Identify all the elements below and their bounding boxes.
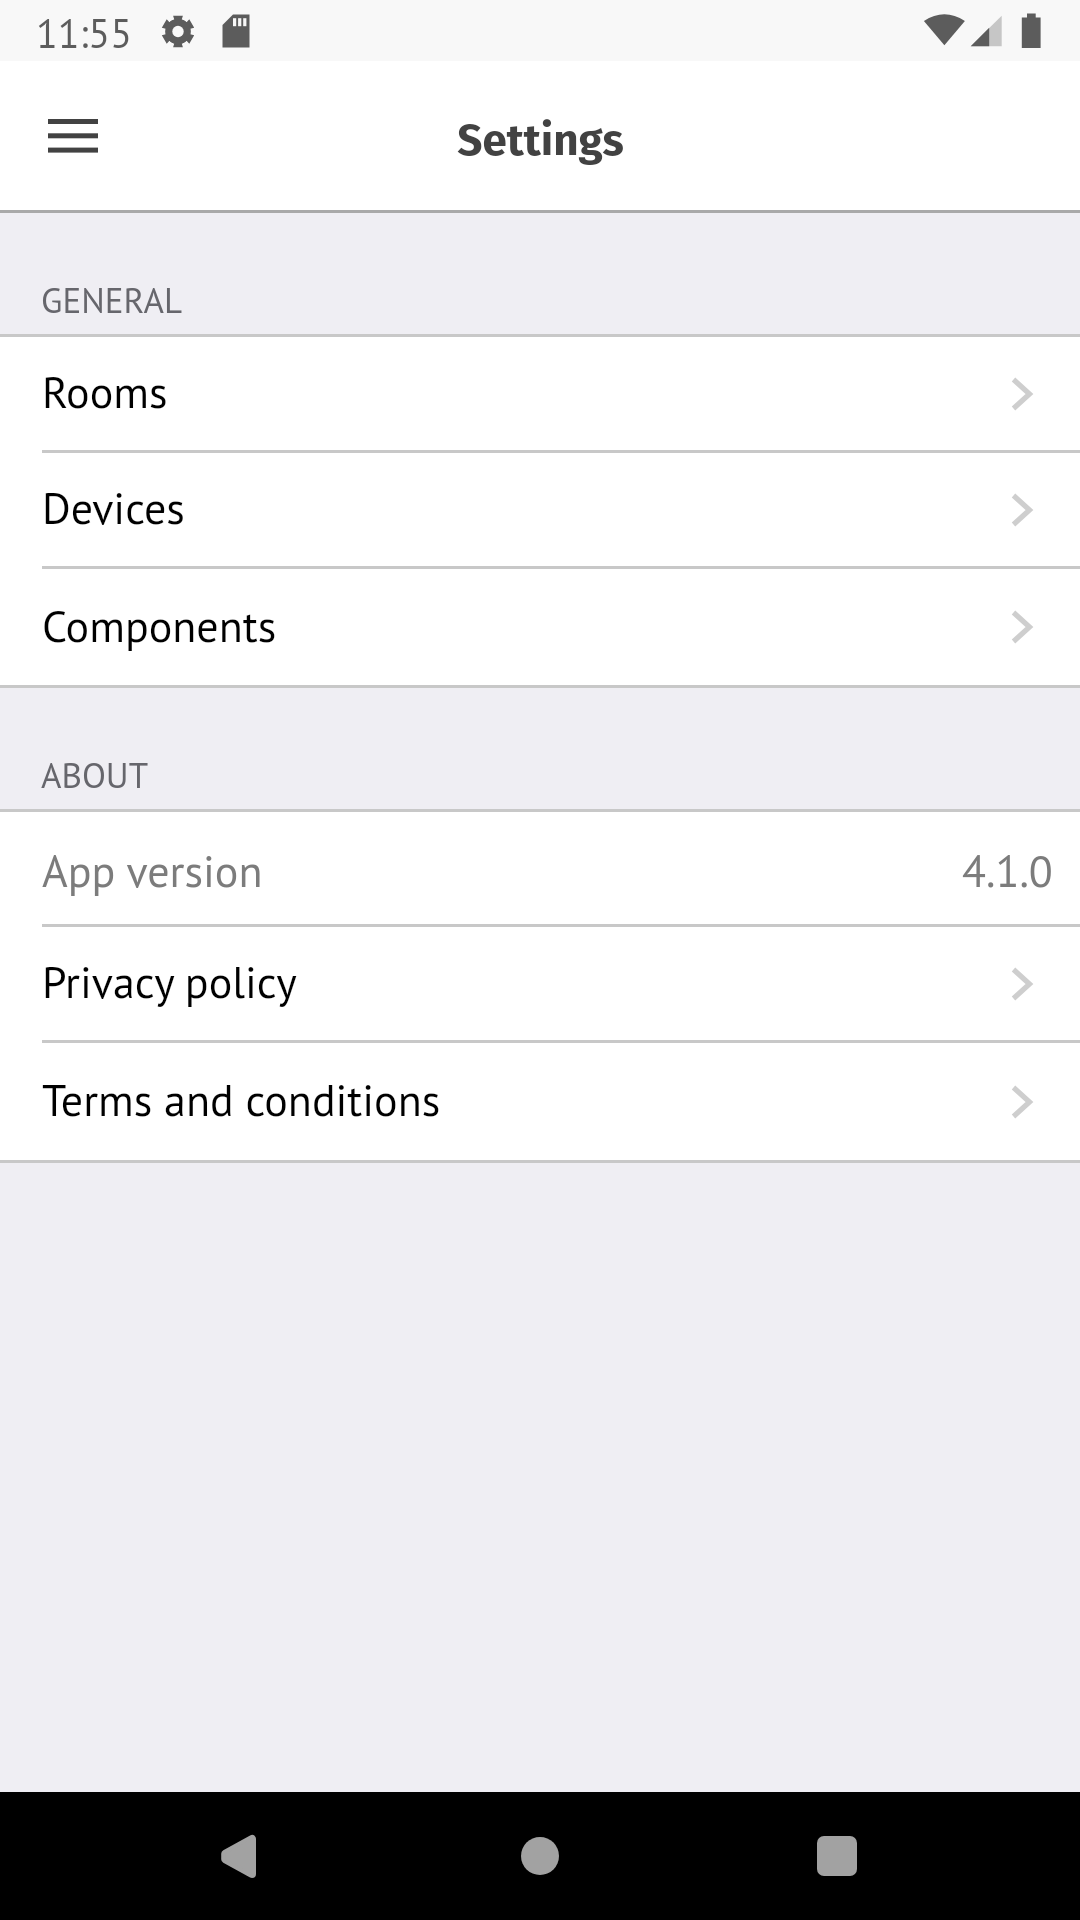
staticText: Components xyxy=(42,597,277,654)
staticText: ABOUT xyxy=(41,752,149,797)
staticText: Terms and conditions xyxy=(42,1071,441,1128)
staticText: Privacy policy xyxy=(42,953,297,1010)
button[interactable]: Rooms xyxy=(0,337,1080,450)
staticText: 4.1.0 xyxy=(962,842,1053,899)
staticText: App version xyxy=(42,842,263,899)
staticText: Settings xyxy=(457,114,624,167)
staticText: GENERAL xyxy=(41,277,182,322)
button[interactable]: Privacy policy xyxy=(0,927,1080,1040)
staticText: Devices xyxy=(42,479,185,536)
button[interactable]: Back xyxy=(189,1802,297,1910)
button[interactable]: Recent apps xyxy=(783,1802,891,1910)
button[interactable]: App version xyxy=(0,812,1080,924)
staticText: Rooms xyxy=(42,363,168,420)
button[interactable]: Home xyxy=(486,1802,594,1910)
staticText: 11:55 xyxy=(36,7,132,59)
button[interactable]: Devices xyxy=(0,453,1080,566)
button[interactable]: Terms and conditions xyxy=(0,1043,1080,1160)
button[interactable]: Components xyxy=(0,569,1080,685)
button[interactable]: Open navigation menu xyxy=(24,87,122,185)
